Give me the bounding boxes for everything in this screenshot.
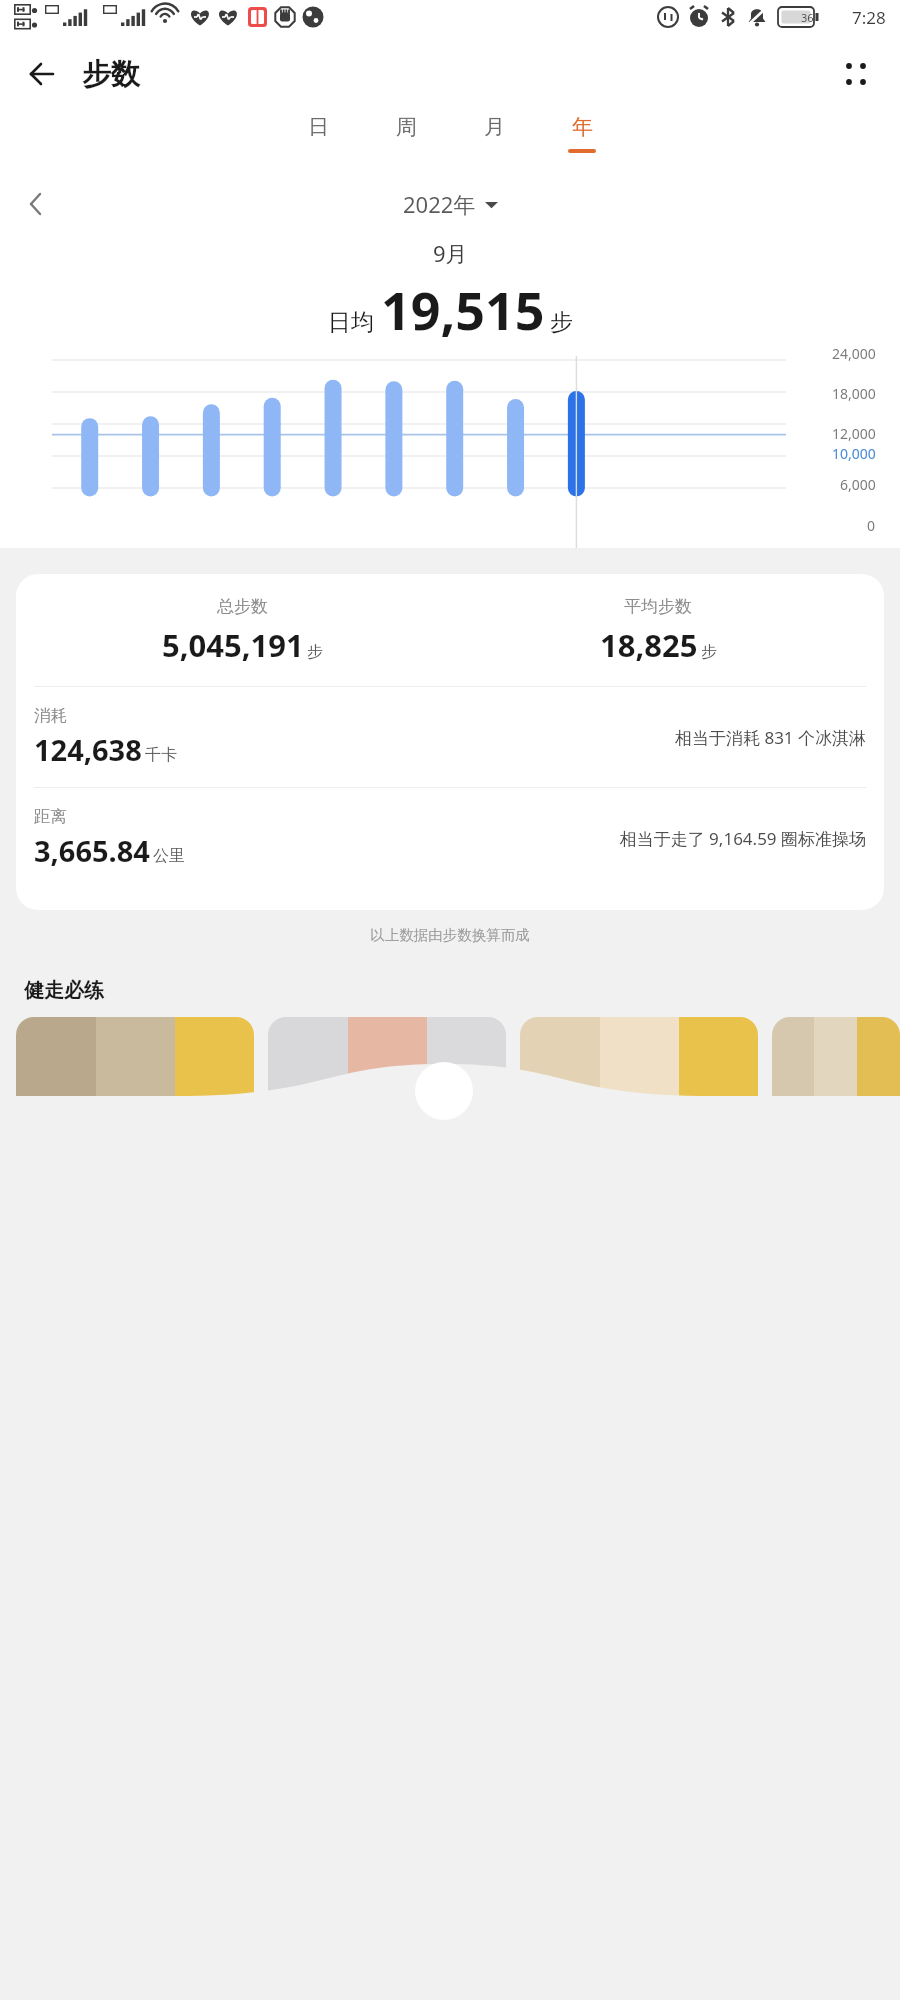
staticText: 10,000 — [832, 444, 876, 463]
staticText: 18,000 — [832, 384, 876, 403]
staticText: 周 — [396, 114, 417, 140]
staticText: 0 — [867, 516, 876, 535]
button[interactable] — [16, 1017, 254, 1107]
staticText: 5,045,191 — [162, 624, 304, 666]
staticText: 6,000 — [840, 475, 876, 494]
staticText: 9月 — [433, 238, 468, 268]
button[interactable] — [772, 1017, 900, 1107]
staticText: 日均 — [328, 308, 374, 337]
staticText: 总步数 — [217, 596, 268, 617]
staticText: 7:28 — [852, 6, 886, 29]
staticText: 距离 — [34, 806, 67, 827]
button[interactable]: 日 — [274, 114, 362, 176]
staticText: 以上数据由步数换算而成 — [0, 926, 900, 944]
staticText: 平均步数 — [624, 596, 692, 617]
staticText: 19,515 — [381, 274, 545, 344]
staticText: 步 — [701, 642, 717, 662]
staticText: 2022年 — [403, 189, 476, 219]
staticText: 消耗 — [34, 705, 67, 726]
staticText: 12,000 — [832, 424, 876, 443]
staticText: 千卡 — [145, 745, 177, 765]
staticText: 18,825 — [600, 624, 698, 666]
staticText: 日 — [308, 114, 329, 140]
button[interactable]: 2022年 — [403, 189, 498, 219]
staticText: 步 — [307, 642, 323, 662]
button[interactable]: 月 — [450, 114, 538, 176]
staticText: 24,000 — [832, 344, 876, 363]
button[interactable]: 更多 — [832, 50, 880, 98]
button[interactable]: 返回 — [16, 48, 68, 100]
button[interactable]: 年 — [538, 114, 626, 176]
staticText: 步 — [550, 308, 573, 337]
staticText: 3,665.84 — [34, 831, 150, 870]
staticText: 年 — [572, 114, 593, 140]
staticText: 124,638 — [34, 730, 142, 769]
staticText: 步数 — [82, 56, 140, 93]
staticText: 36 — [801, 10, 814, 25]
staticText: 健走必练 — [24, 978, 104, 1003]
staticText: 月 — [484, 114, 505, 140]
button[interactable] — [268, 1017, 506, 1107]
button[interactable] — [520, 1017, 758, 1107]
staticText: 相当于消耗 831 个冰淇淋 — [383, 726, 866, 749]
button[interactable]: 周 — [362, 114, 450, 176]
button[interactable]: 上一年 — [12, 180, 60, 228]
staticText: 公里 — [153, 846, 185, 866]
staticText: 相当于走了 9,164.59 圈标准操场 — [383, 827, 866, 850]
